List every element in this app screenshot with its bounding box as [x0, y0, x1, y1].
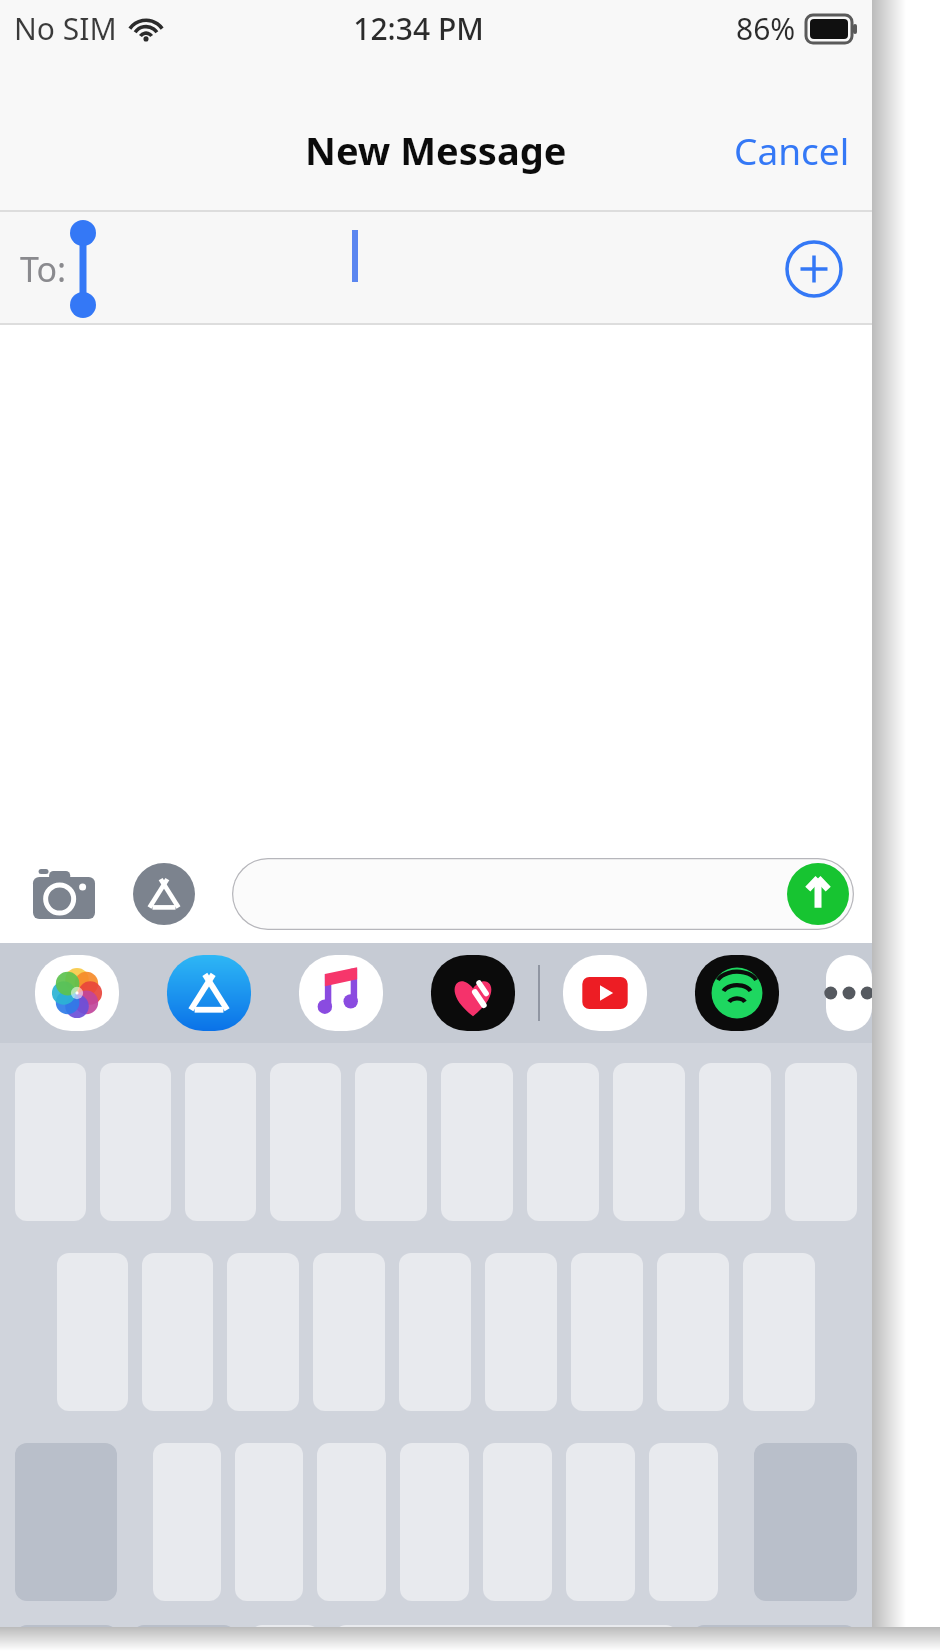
- button[interactable]: App Store: [126, 856, 202, 932]
- button[interactable]: Photos: [34, 950, 120, 1036]
- button[interactable]: YouTube: [562, 950, 648, 1036]
- button[interactable]: More: [826, 950, 872, 1036]
- staticText: Cancel: [734, 125, 850, 175]
- staticText: 86%: [736, 8, 796, 49]
- button[interactable]: Emoji: [132, 1625, 236, 1651]
- button[interactable]: Send: [787, 863, 849, 925]
- button[interactable]: Digital Touch: [430, 950, 516, 1036]
- button[interactable]: Cancel: [712, 111, 872, 189]
- button[interactable]: Numbers: [15, 1625, 118, 1651]
- staticText: 12:34 PM: [353, 8, 484, 49]
- staticText: New Message: [305, 124, 567, 176]
- staticText: No SIM: [14, 8, 117, 49]
- button[interactable]: To:: [0, 212, 872, 325]
- button[interactable]: Dictation: [250, 1625, 320, 1651]
- button[interactable]: Send: [232, 858, 854, 930]
- button[interactable]: Return: [692, 1625, 857, 1651]
- button[interactable]: Music: [298, 950, 384, 1036]
- button[interactable]: Spotify: [694, 950, 780, 1036]
- button[interactable]: Add contact: [776, 231, 852, 307]
- button[interactable]: Space: [334, 1625, 678, 1651]
- staticText: To:: [20, 246, 67, 292]
- button[interactable]: Camera: [26, 856, 102, 932]
- button[interactable]: App Store: [166, 950, 252, 1036]
